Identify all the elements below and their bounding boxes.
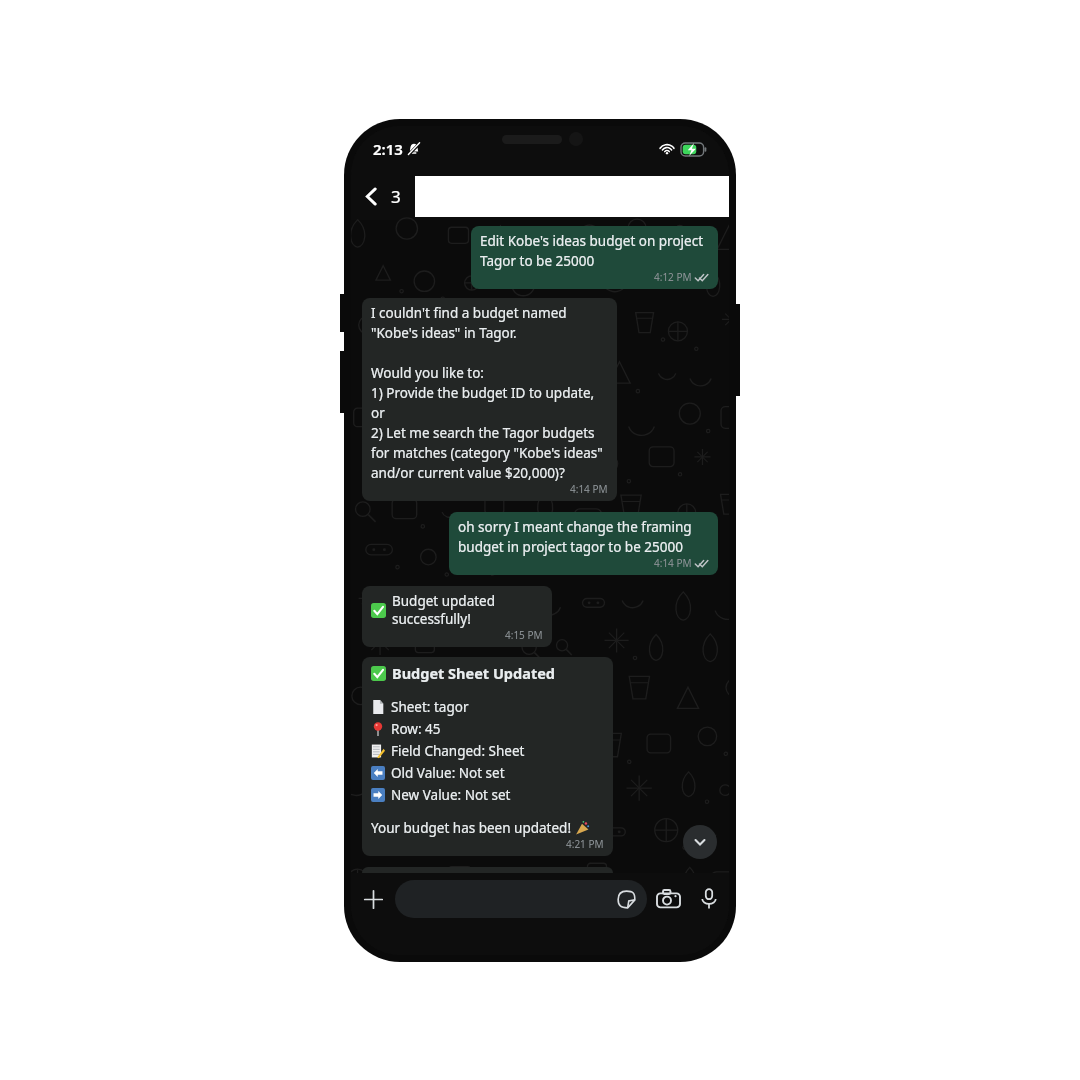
button[interactable]: oh sorry I meant change the framing budg…: [449, 512, 718, 575]
staticText: 4:12 PM: [654, 270, 692, 284]
button[interactable]: Camera: [647, 877, 689, 921]
button[interactable]: Voice message: [689, 877, 729, 921]
staticText: 2:13: [373, 139, 403, 159]
staticText: 4:21 PM: [566, 837, 604, 851]
staticText: 4:15 PM: [505, 628, 543, 642]
staticText: Edit Kobe's ideas budget on project Tago…: [480, 232, 709, 270]
staticText: Row: 45: [391, 720, 441, 738]
button[interactable]: Budget Sheet Updated: [362, 657, 613, 856]
button[interactable]: Attach: [351, 877, 395, 921]
staticText: Old Value: Not set: [391, 764, 505, 782]
staticText: oh sorry I meant change the framing budg…: [458, 518, 709, 556]
staticText: New Value: Not set: [391, 786, 511, 804]
staticText: Budget Sheet Updated: [392, 663, 555, 683]
staticText: 3: [391, 185, 401, 208]
staticText: Sheet: tagor: [391, 698, 469, 716]
other: Stickers: [617, 890, 636, 909]
button[interactable]: Budget updated successfully!: [362, 586, 552, 647]
staticText: Your budget has been updated!: [371, 819, 575, 837]
staticText: 4:14 PM: [570, 482, 608, 496]
staticText: 4:14 PM: [654, 556, 692, 570]
button[interactable]: Scroll to bottom: [683, 825, 717, 859]
staticText: I couldn't find a budget named "Kobe's i…: [371, 304, 608, 482]
staticText: Field Changed: Sheet: [391, 742, 525, 760]
button[interactable]: Back: [351, 172, 391, 220]
button[interactable]: I couldn't find a budget named "Kobe's i…: [362, 298, 617, 501]
button[interactable]: Edit Kobe's ideas budget on project Tago…: [471, 226, 718, 289]
button[interactable]: Stickers: [395, 880, 647, 918]
staticText: Budget updated successfully!: [392, 592, 543, 628]
